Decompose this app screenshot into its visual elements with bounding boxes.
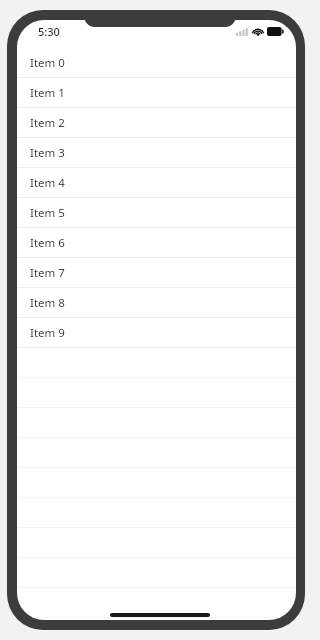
staticText: Item 7: [30, 265, 65, 281]
staticText: Item 3: [30, 145, 65, 161]
staticText: Item 6: [30, 235, 65, 251]
button[interactable]: Item 0: [17, 48, 296, 78]
staticText: Item 1: [30, 85, 65, 101]
staticText: Item 0: [30, 55, 65, 71]
button[interactable]: Item 2: [17, 108, 296, 138]
button[interactable]: Item 5: [17, 198, 296, 228]
staticText: 5:30: [38, 24, 60, 39]
button[interactable]: Item 8: [17, 288, 296, 318]
button[interactable]: Item 7: [17, 258, 296, 288]
staticText: Item 8: [30, 295, 65, 311]
staticText: Item 4: [30, 175, 65, 191]
staticText: Item 9: [30, 325, 65, 341]
staticText: Item 5: [30, 205, 65, 221]
button[interactable]: Item 1: [17, 78, 296, 108]
button[interactable]: Item 3: [17, 138, 296, 168]
other: Battery: [267, 27, 284, 36]
other: Cellular signal: [236, 27, 249, 36]
staticText: Item 2: [30, 115, 65, 131]
button[interactable]: Item 4: [17, 168, 296, 198]
button[interactable]: Item 6: [17, 228, 296, 258]
other: Wi-Fi: [252, 27, 264, 36]
button[interactable]: Item 9: [17, 318, 296, 348]
